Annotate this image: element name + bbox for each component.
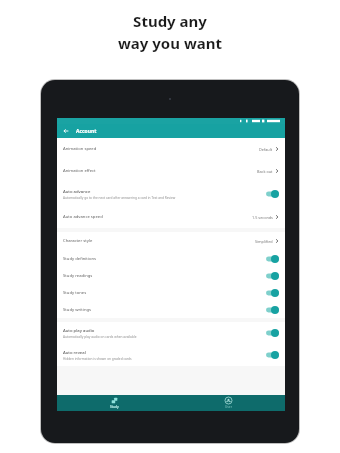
button[interactable]: Toggle xyxy=(266,329,279,337)
staticText: Study readings xyxy=(63,273,93,279)
staticText: Animation effect xyxy=(63,168,96,174)
button[interactable]: Study xyxy=(57,395,171,411)
button[interactable]: Auto advance speed xyxy=(57,206,285,228)
button[interactable]: Animation speed xyxy=(57,138,285,160)
staticText: Character style xyxy=(63,238,93,244)
staticText: User xyxy=(225,405,232,409)
staticText: Automatically go to the next card after … xyxy=(63,196,176,200)
staticText: Study writings xyxy=(63,307,92,313)
staticText: Auto play audio xyxy=(63,328,95,334)
staticText: Auto advance xyxy=(63,189,91,195)
button[interactable]: Character style xyxy=(57,232,285,250)
button[interactable]: Toggle xyxy=(266,351,279,359)
staticText: Study definitions xyxy=(63,256,97,262)
button[interactable]: Study definitions xyxy=(57,250,285,267)
staticText: Study tones xyxy=(63,290,87,296)
button[interactable]: Auto advance xyxy=(57,182,285,206)
button[interactable]: Toggle xyxy=(266,190,279,198)
staticText: Hidden information is shown on graded ca… xyxy=(63,357,132,361)
staticText: way you want xyxy=(118,33,222,53)
staticText: Default xyxy=(259,147,273,152)
button[interactable]: Toggle xyxy=(266,306,279,314)
staticText: Simplified xyxy=(255,239,273,244)
button[interactable]: Study tones xyxy=(57,284,285,301)
staticText: Auto reveal xyxy=(63,350,86,356)
button[interactable]: Study readings xyxy=(57,267,285,284)
button[interactable]: User xyxy=(171,395,285,411)
button[interactable]: Toggle xyxy=(266,255,279,263)
staticText: Automatically play audio on cards when a… xyxy=(63,335,137,339)
button[interactable]: Animation effect xyxy=(57,160,285,182)
button[interactable]: Auto play audio xyxy=(57,322,285,344)
staticText: Back out xyxy=(257,169,273,174)
button[interactable]: Back xyxy=(61,126,71,136)
staticText: Study xyxy=(110,405,119,409)
button[interactable]: Toggle xyxy=(266,272,279,280)
button[interactable]: Auto reveal xyxy=(57,344,285,366)
button[interactable]: Toggle xyxy=(266,289,279,297)
staticText: 1.5 seconds xyxy=(252,215,273,220)
staticText: Account xyxy=(76,128,97,135)
staticText: Study any xyxy=(133,11,207,31)
button[interactable]: Study writings xyxy=(57,301,285,318)
staticText: Animation speed xyxy=(63,146,97,152)
staticText: Auto advance speed xyxy=(63,214,103,220)
